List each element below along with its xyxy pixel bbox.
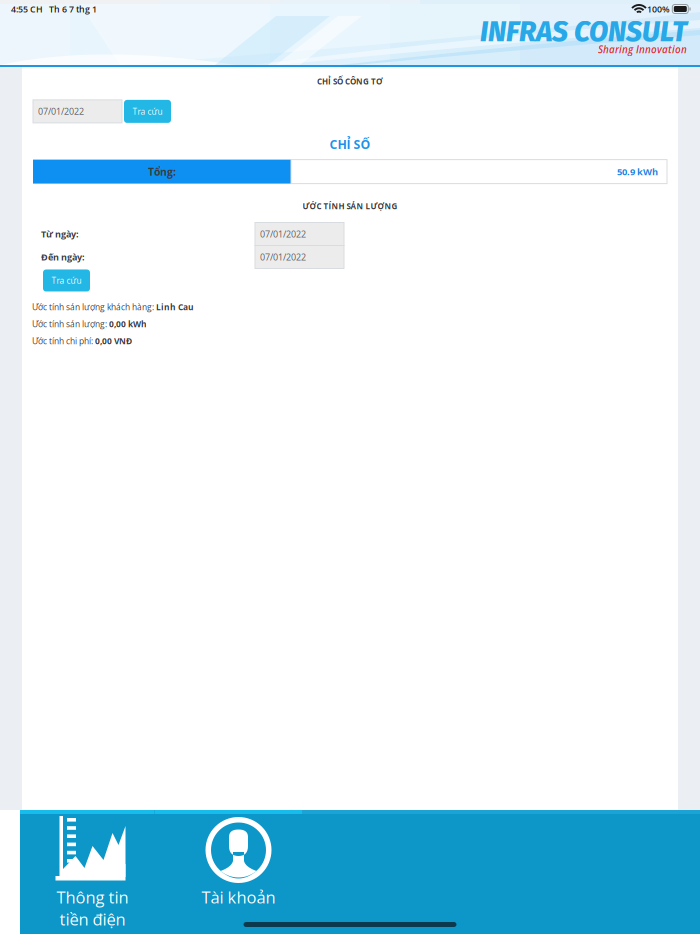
staticText: 07/01/2022 bbox=[260, 251, 306, 263]
staticText: 4:55 CH Th 6 7 thg 1 bbox=[11, 3, 97, 15]
staticText: Tra cứu bbox=[51, 275, 81, 286]
staticText: Sharing Innovation bbox=[598, 43, 687, 56]
staticText: Ước tính sản lượng: bbox=[32, 318, 109, 330]
staticText: Linh Cau bbox=[156, 301, 194, 313]
button[interactable]: Tài khoản bbox=[165, 814, 312, 934]
button[interactable]: Tra cứu bbox=[43, 269, 90, 291]
staticText: Tra cứu bbox=[132, 106, 162, 117]
button[interactable]: 07/01/2022 bbox=[255, 245, 344, 268]
staticText: tiền điện bbox=[59, 908, 125, 930]
staticText: 07/01/2022 bbox=[260, 228, 306, 240]
staticText: Tài khoản bbox=[201, 886, 275, 908]
staticText: Ước tính chi phí: bbox=[32, 335, 95, 347]
staticText: INFRAS CONSULT bbox=[480, 15, 687, 49]
button[interactable]: Tra cứu bbox=[124, 100, 171, 123]
staticText: 0,00 kWh bbox=[109, 318, 147, 330]
staticText: 50.9 kWh bbox=[617, 165, 658, 178]
staticText: 0,00 VNĐ bbox=[95, 335, 132, 347]
staticText: 07/01/2022 bbox=[38, 105, 84, 117]
staticText: Thông tin bbox=[56, 886, 128, 908]
staticText: Từ ngày: bbox=[41, 228, 79, 240]
staticText: 100% bbox=[645, 3, 672, 15]
button[interactable]: 07/01/2022 bbox=[255, 222, 344, 245]
button[interactable]: Thông tin bbox=[20, 814, 165, 934]
staticText: Đến ngày: bbox=[41, 251, 85, 263]
staticText: Tổng: bbox=[148, 164, 176, 179]
staticText: Ước tính sản lượng khách hàng: bbox=[32, 301, 156, 313]
button[interactable]: 07/01/2022 bbox=[33, 100, 122, 123]
staticText: CHỈ SỐ bbox=[329, 136, 370, 153]
staticText: CHỈ SỐ CÔNG TƠ bbox=[317, 76, 383, 87]
staticText: ƯỚC TÍNH SẢN LƯỢNG bbox=[302, 201, 397, 211]
